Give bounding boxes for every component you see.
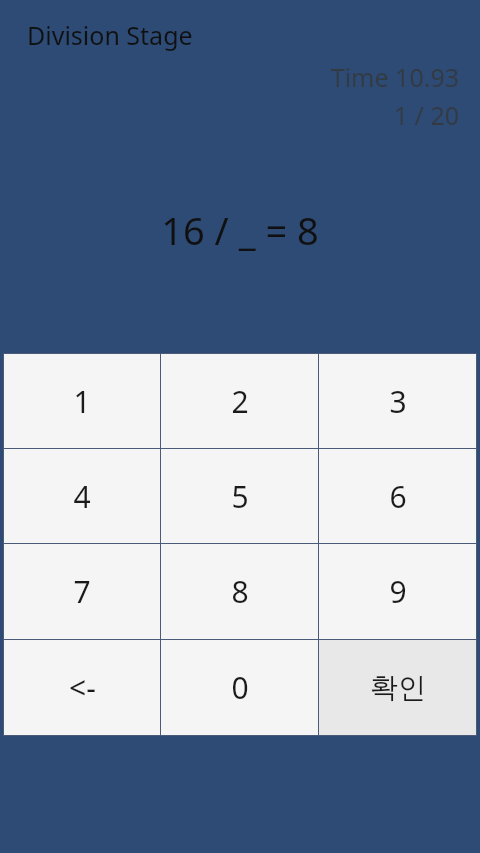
button[interactable]: 4 [4, 449, 160, 543]
staticText: <- [69, 667, 96, 708]
staticText: 5 [231, 476, 249, 517]
staticText: Time 10.93 [0, 60, 459, 94]
staticText: 16 / _ = 8 [0, 204, 480, 256]
button[interactable]: 6 [319, 449, 476, 543]
button[interactable]: 7 [4, 544, 160, 639]
staticText: 2 [231, 381, 249, 422]
button[interactable]: 확인 [319, 640, 476, 735]
staticText: Division Stage [27, 18, 193, 52]
button[interactable]: 2 [161, 354, 318, 448]
staticText: 4 [73, 476, 91, 517]
button[interactable]: <- [4, 640, 160, 735]
button[interactable]: 1 [4, 354, 160, 448]
staticText: 6 [389, 476, 407, 517]
button[interactable]: 3 [319, 354, 476, 448]
button[interactable]: 9 [319, 544, 476, 639]
staticText: 1 [73, 381, 91, 422]
staticText: 0 [231, 667, 249, 708]
staticText: 9 [389, 571, 407, 612]
staticText: 7 [73, 571, 91, 612]
button[interactable]: 5 [161, 449, 318, 543]
staticText: 1 / 20 [0, 98, 459, 132]
button[interactable]: 0 [161, 640, 318, 735]
staticText: 3 [389, 381, 407, 422]
staticText: 확인 [370, 670, 426, 705]
staticText: 8 [231, 571, 249, 612]
button[interactable]: 8 [161, 544, 318, 639]
